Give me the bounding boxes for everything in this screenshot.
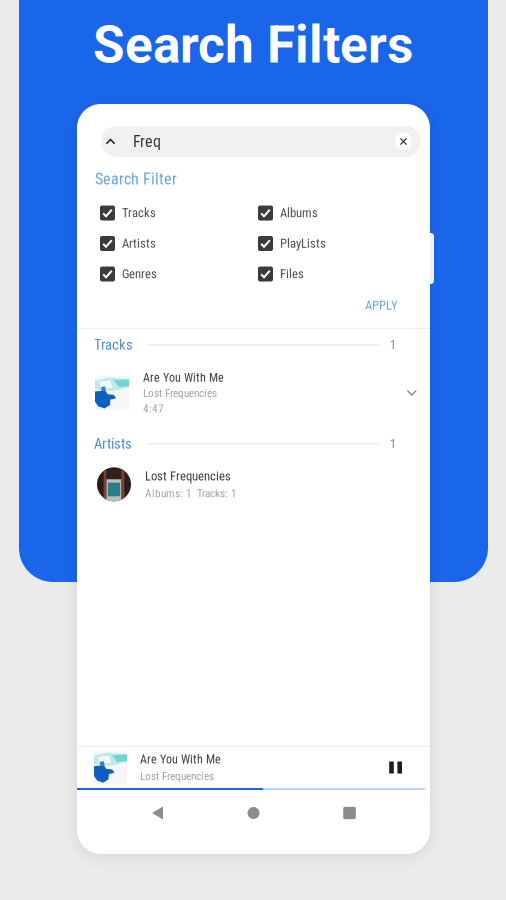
staticText: Artists	[94, 435, 132, 452]
staticText: 1	[390, 437, 396, 451]
button[interactable]: Tracks	[100, 203, 220, 223]
staticText: PlayLists	[280, 236, 326, 251]
staticText: Freq	[133, 132, 161, 151]
staticText: APPLY	[365, 298, 398, 313]
staticText: Search Filter	[95, 170, 177, 188]
staticText: Genres	[122, 267, 157, 281]
staticText: Artists	[122, 236, 156, 251]
button[interactable]: Are You With Me	[77, 747, 430, 788]
button[interactable]: Recent apps	[320, 790, 378, 836]
button[interactable]: Albums	[258, 203, 378, 223]
staticText: Files	[280, 267, 304, 281]
button[interactable]: Artists	[100, 233, 220, 253]
button[interactable]: APPLY	[357, 293, 406, 318]
staticText: Albums	[280, 206, 318, 220]
button[interactable]: Clear search text	[386, 126, 421, 157]
staticText: Tracks	[122, 206, 156, 220]
button[interactable]: Home	[224, 790, 282, 836]
staticText: 4:47	[143, 402, 164, 415]
button[interactable]: PlayLists	[258, 233, 378, 253]
button[interactable]: Collapse search	[101, 126, 120, 157]
staticText: Lost Frequencies	[143, 387, 217, 400]
staticText: Are You With Me	[143, 370, 224, 385]
staticText: Search Filters	[93, 15, 413, 75]
staticText: Tracks	[94, 336, 133, 353]
button[interactable]: Genres	[100, 264, 220, 284]
staticText: Lost Frequencies	[140, 769, 214, 783]
staticText: Are You With Me	[140, 752, 221, 766]
staticText: Albums: 1 Tracks: 1	[145, 487, 237, 500]
staticText: Lost Frequencies	[145, 469, 231, 484]
button[interactable]: Are You With Me	[77, 372, 430, 414]
button[interactable]: Lost Frequencies	[77, 465, 430, 503]
button[interactable]: Back	[128, 790, 186, 836]
button[interactable]: Files	[258, 264, 378, 284]
staticText: 1	[390, 338, 396, 352]
